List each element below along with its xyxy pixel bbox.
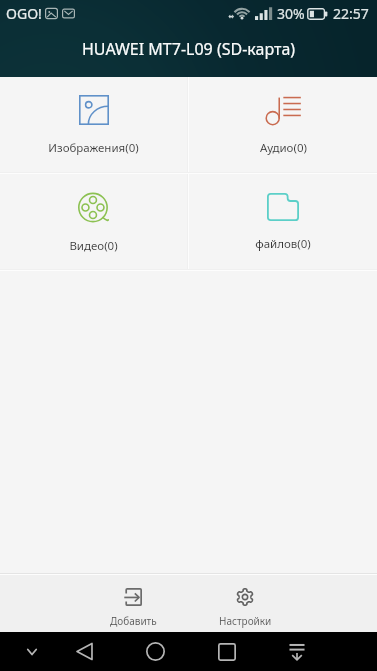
button[interactable]: Hide navigation bar: [8, 632, 56, 671]
button[interactable]: Аудио(0): [189, 77, 377, 172]
button[interactable]: Видео(0): [0, 174, 187, 269]
staticText: 22:57: [333, 4, 369, 23]
staticText: Изображения(0): [48, 140, 139, 156]
staticText: Видео(0): [69, 238, 118, 254]
staticText: 30%: [277, 4, 305, 23]
staticText: OGO!: [6, 4, 42, 23]
staticText: HUAWEI MT7-L09 (SD-карта): [82, 38, 296, 60]
button[interactable]: Back: [60, 632, 108, 671]
button[interactable]: файлов(0): [189, 174, 377, 269]
button[interactable]: Notification shade: [273, 632, 321, 671]
button[interactable]: Recent apps: [203, 632, 251, 671]
button[interactable]: Изображения(0): [0, 77, 187, 172]
staticText: Аудио(0): [260, 140, 307, 156]
button[interactable]: Добавить: [77, 575, 189, 632]
staticText: файлов(0): [255, 236, 311, 252]
staticText: Добавить: [110, 614, 157, 628]
button[interactable]: Home: [131, 632, 179, 671]
staticText: Настройки: [219, 614, 272, 628]
button[interactable]: Настройки: [189, 575, 301, 632]
